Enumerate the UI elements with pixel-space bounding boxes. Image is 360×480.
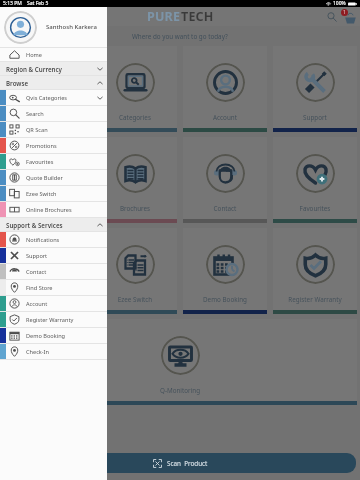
button[interactable]: Qvis Categories [0,90,107,105]
button[interactable]: Support & Services [0,218,107,231]
staticText: Support [26,252,48,260]
staticText: Notifications [26,236,60,244]
staticText: Search [26,110,44,118]
staticText: TECH [181,8,214,25]
button[interactable]: Quote Builder [0,170,107,185]
staticText: Account [26,300,48,308]
button[interactable]: Promotions [0,138,107,153]
button[interactable]: Home [0,48,107,61]
button[interactable]: Categories [93,46,177,132]
button[interactable]: Account [183,46,267,132]
staticText: Quote [3,295,87,304]
button[interactable]: Favourites [0,154,107,169]
staticText: Quote Builder [26,174,63,182]
button[interactable]: Contact [0,264,107,279]
button[interactable]: Ezee Switch [93,228,177,314]
staticText: Check-In [26,348,49,356]
button[interactable]: Scan Product [4,453,356,473]
staticText: Demo Booking [26,332,66,340]
staticText: Santhosh Karkera [46,23,97,31]
staticText: 1 [343,9,346,16]
staticText: Contact [26,268,47,276]
button[interactable]: Register Warranty [0,312,107,327]
staticText: Browse [6,79,29,87]
staticText: Qvis Categories [26,94,68,102]
button[interactable]: Search [325,10,339,24]
button[interactable]: Shopping basket [340,9,356,25]
staticText: 5:13 PM Sat Feb 5 [3,0,49,7]
button[interactable]: Santhosh Karkera [0,7,107,47]
staticText: Region & Currency [6,65,63,73]
staticText: Brochures [93,204,177,213]
staticText: Online Brochures [26,206,72,214]
staticText: 100% [333,0,346,7]
button[interactable]: Promotions [3,137,87,223]
button[interactable]: Register Warranty [273,228,357,314]
staticText: Favourites [273,204,357,213]
staticText: Q-Monitoring [3,386,357,395]
button[interactable]: Demo Booking [183,228,267,314]
staticText: Where do you want to go today? [132,32,228,41]
button[interactable]: Favourites [273,137,357,223]
button[interactable]: Ezee Switch [0,186,107,201]
button[interactable]: Account [0,296,107,311]
button[interactable]: Contact [183,137,267,223]
button[interactable]: Search [0,106,107,121]
staticText: PURE [147,8,181,25]
staticText: Qvis [3,113,87,122]
staticText: Home [26,51,42,59]
button[interactable]: Browse [0,76,107,89]
staticText: QR Scan [26,126,48,134]
staticText: Account [183,113,267,122]
button[interactable]: Support [273,46,357,132]
staticText: Ezee Switch [93,295,177,304]
button[interactable]: Brochures [93,137,177,223]
staticText: Favourites [26,158,54,166]
button[interactable]: Demo Booking [0,328,107,343]
button[interactable]: Online Brochures [0,202,107,217]
staticText: Find Store [26,284,53,292]
staticText: Promotions [3,204,87,213]
staticText: Demo Booking [183,295,267,304]
staticText: Support [273,113,357,122]
staticText: Categories [93,113,177,122]
button[interactable]: Support [0,248,107,263]
staticText: Promotions [26,142,57,150]
button[interactable]: QR Scan [0,122,107,137]
staticText: Ezee Switch [26,190,57,198]
staticText: Register Warranty [273,295,357,304]
button[interactable]: Quote [3,228,87,314]
button[interactable]: Check-In [0,344,107,359]
button[interactable]: Find Store [0,280,107,295]
button[interactable]: Qvis [3,46,87,132]
button[interactable]: Region & Currency [0,62,107,75]
staticText: Support & Services [6,221,63,229]
staticText: Contact [183,204,267,213]
button[interactable]: Notifications [0,232,107,247]
staticText: Scan Product [167,459,208,468]
staticText: Register Warranty [26,316,74,324]
button[interactable]: Q-Monitoring [3,319,357,405]
